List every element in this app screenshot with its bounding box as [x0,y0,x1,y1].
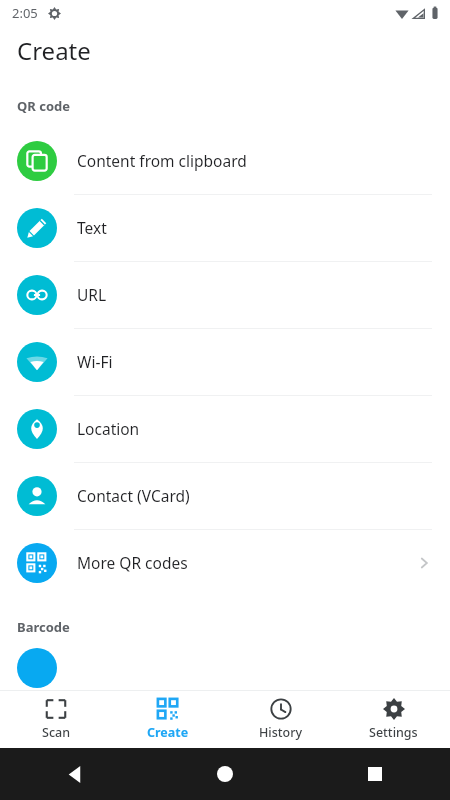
button[interactable]: Contact (VCard) [0,462,450,529]
button[interactable]: Wi-Fi [0,328,450,395]
staticText: Location [77,418,140,439]
button[interactable]: URL [0,261,450,328]
button[interactable]: Back [0,748,150,800]
staticText: QR code [17,97,71,115]
staticText: Settings [369,724,418,741]
staticText: Create [147,724,189,741]
button[interactable]: Settings [337,691,450,748]
staticText: 2:05 [12,4,38,22]
button[interactable]: More QR codes [0,529,450,596]
button[interactable] [0,648,450,688]
button[interactable]: Content from clipboard [0,127,450,194]
staticText: History [259,724,303,741]
staticText: Contact (VCard) [77,485,190,506]
staticText: Text [77,217,107,238]
button[interactable]: Home [150,748,300,800]
button[interactable]: Create [112,691,224,748]
staticText: More QR codes [77,552,188,573]
button[interactable]: Location [0,395,450,462]
button[interactable]: Scan [0,691,112,748]
staticText: Create [17,34,91,67]
button[interactable]: Text [0,194,450,261]
staticText: Barcode [17,618,70,636]
staticText: Scan [42,724,71,741]
staticText: Wi-Fi [77,351,113,372]
button[interactable]: History [224,691,337,748]
staticText: Content from clipboard [77,150,247,171]
button[interactable]: Recent apps [300,748,450,800]
staticText: URL [77,284,107,305]
